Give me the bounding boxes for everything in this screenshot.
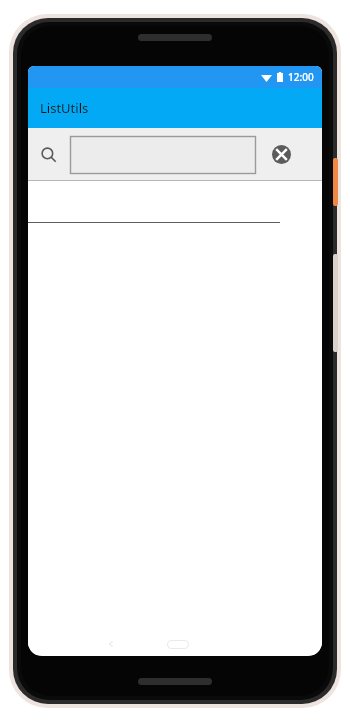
button[interactable]: Search query input <box>70 136 256 174</box>
button[interactable]: Search <box>28 128 70 181</box>
button[interactable]: Home <box>161 634 195 654</box>
button[interactable]: Clear search <box>264 128 298 181</box>
staticText: ListUtils <box>40 99 89 117</box>
staticText: 12:00 <box>288 70 314 84</box>
